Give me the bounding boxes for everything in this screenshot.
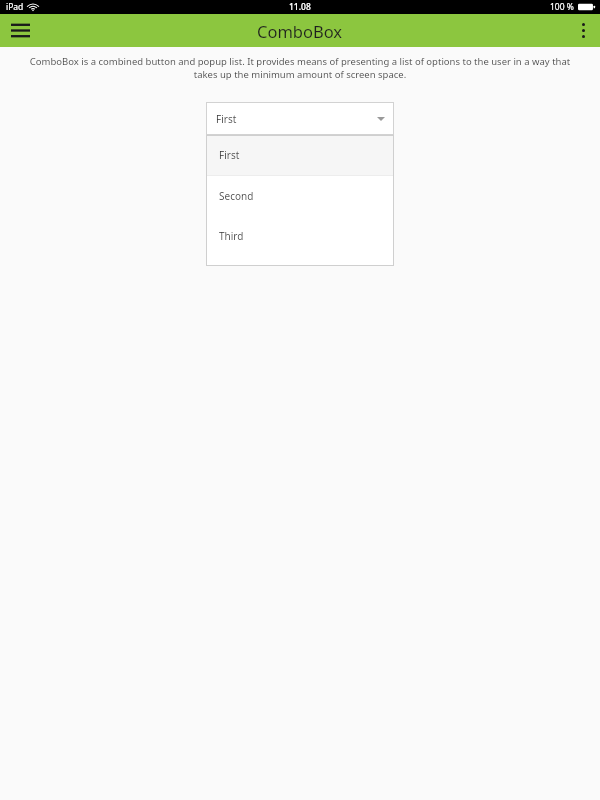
button[interactable]: Second (206, 176, 394, 216)
staticText: First (219, 148, 240, 162)
staticText: 11.08 (289, 1, 311, 13)
staticText: ComboBox (257, 20, 343, 42)
button[interactable]: Menu (0, 14, 40, 47)
staticText: Third (219, 229, 244, 243)
staticText: 100 % (550, 1, 574, 13)
button[interactable]: First (206, 135, 394, 175)
staticText: iPad (6, 1, 24, 13)
button[interactable]: First (206, 102, 394, 135)
button[interactable]: Third (206, 216, 394, 256)
staticText: First (216, 112, 237, 126)
staticText: Second (219, 189, 254, 203)
button[interactable]: More options (566, 14, 600, 47)
staticText: ComboBox is a combined button and popup … (22, 55, 578, 81)
